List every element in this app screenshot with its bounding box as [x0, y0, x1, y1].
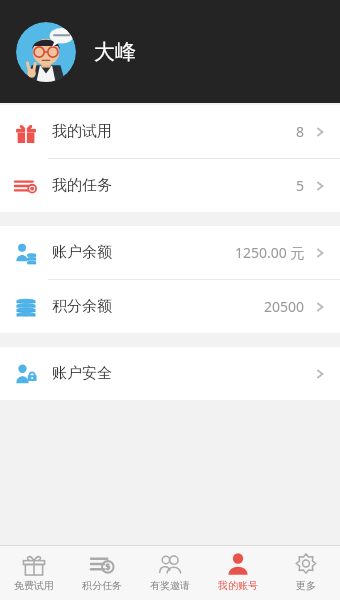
staticText: 账户安全	[52, 364, 112, 383]
staticText: 账户余额	[52, 243, 112, 262]
button[interactable]: 积分余额	[0, 280, 340, 333]
staticText: 我的试用	[52, 122, 112, 141]
button[interactable]: 有奖邀请	[136, 546, 204, 600]
staticText: 有奖邀请	[150, 579, 190, 592]
button[interactable]: 更多	[272, 546, 340, 600]
button[interactable]: 我的账号	[204, 546, 272, 600]
staticText: 我的账号	[218, 579, 258, 592]
staticText: 大峰	[94, 39, 136, 65]
staticText: 免费试用	[14, 579, 54, 592]
button[interactable]: 大峰	[0, 0, 340, 103]
button[interactable]: 积分任务	[68, 546, 136, 600]
staticText: 更多	[296, 579, 316, 592]
button[interactable]: 账户安全	[0, 347, 340, 400]
staticText: 积分余额	[52, 297, 112, 316]
staticText: 8	[296, 122, 305, 141]
staticText: 我的任务	[52, 176, 112, 195]
staticText: 积分任务	[82, 579, 122, 592]
button[interactable]: 免费试用	[0, 546, 68, 600]
button[interactable]: 我的试用	[0, 105, 340, 158]
staticText: 5	[296, 176, 305, 195]
staticText: 20500	[264, 297, 305, 316]
staticText: 1250.00 元	[235, 243, 305, 262]
button[interactable]: 我的任务	[0, 159, 340, 212]
button[interactable]: 账户余额	[0, 226, 340, 279]
